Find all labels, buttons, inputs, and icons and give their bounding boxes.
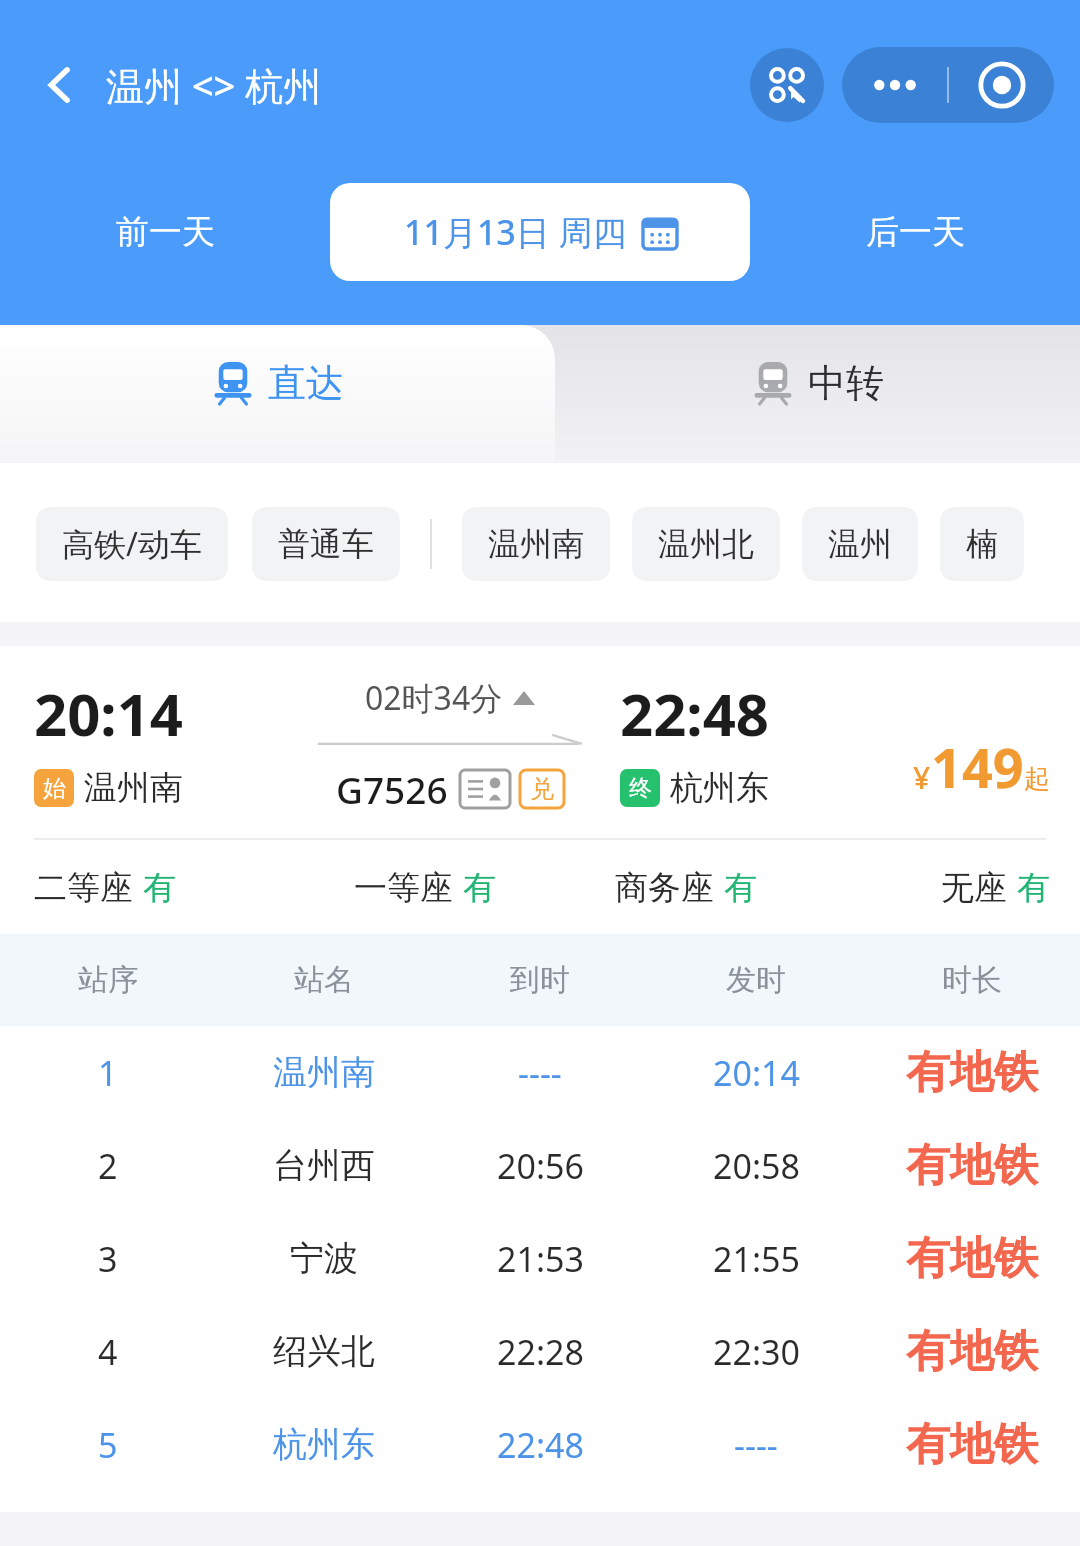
staticText: 到时 <box>510 961 570 999</box>
staticText: 兑 <box>530 774 554 804</box>
staticText: 149 <box>931 730 1024 804</box>
staticText: 有 <box>1017 867 1050 909</box>
staticText: 前一天 <box>116 211 215 253</box>
staticText: 有地铁 <box>906 1138 1038 1193</box>
staticText: 二等座 <box>34 867 133 909</box>
button[interactable]: 温州南 <box>462 507 610 581</box>
staticText: 杭州东 <box>670 767 769 809</box>
staticText: 温州北 <box>658 524 754 564</box>
button[interactable]: 2 <box>0 1119 1080 1212</box>
staticText: 21:53 <box>497 1236 584 1282</box>
staticText: 温州南 <box>84 767 183 809</box>
staticText: 温州 <> 杭州 <box>106 59 322 111</box>
staticText: 20:14 <box>713 1050 800 1096</box>
staticText: 高铁/动车 <box>62 522 202 566</box>
staticText: 后一天 <box>866 211 965 253</box>
button[interactable]: 二等座 <box>34 867 294 909</box>
staticText: ---- <box>734 1422 778 1468</box>
staticText: 无座 <box>941 867 1007 909</box>
staticText: 起 <box>1024 763 1050 796</box>
staticText: 宁波 <box>290 1237 358 1280</box>
button[interactable]: 中转 <box>555 325 1080 463</box>
button[interactable]: 5 <box>0 1398 1080 1491</box>
button[interactable]: 直达 <box>0 325 555 463</box>
staticText: 02时34分 <box>365 676 503 720</box>
button[interactable]: 后一天 <box>750 182 1080 282</box>
button[interactable]: Close <box>949 47 1054 123</box>
staticText: 有地铁 <box>906 1324 1038 1379</box>
staticText: 时长 <box>942 961 1002 999</box>
button[interactable]: 商务座 <box>555 867 816 909</box>
staticText: 4 <box>98 1329 118 1375</box>
staticText: 杭州东 <box>273 1423 375 1466</box>
staticText: 终 <box>629 774 652 803</box>
button[interactable]: 4 <box>0 1305 1080 1398</box>
staticText: 22:48 <box>497 1422 584 1468</box>
button[interactable]: More options <box>842 47 947 123</box>
button[interactable]: 楠 <box>940 507 1024 581</box>
staticText: 有 <box>143 867 176 909</box>
staticText: 3 <box>98 1236 118 1282</box>
button[interactable]: 普通车 <box>252 507 400 581</box>
staticText: 有地铁 <box>906 1231 1038 1286</box>
staticText: 一等座 <box>354 867 453 909</box>
staticText: 有地铁 <box>906 1045 1038 1100</box>
staticText: 站序 <box>78 961 138 999</box>
staticText: 发时 <box>726 961 786 999</box>
staticText: ¥ <box>913 757 931 798</box>
staticText: 中转 <box>808 359 884 407</box>
staticText: 5 <box>98 1422 118 1468</box>
staticText: 温州南 <box>488 524 584 564</box>
staticText: 温州 <box>828 524 892 564</box>
button[interactable]: 3 <box>0 1212 1080 1305</box>
staticText: 绍兴北 <box>273 1330 375 1373</box>
staticText: 20:14 <box>34 674 184 753</box>
button[interactable]: 温州 <box>802 507 918 581</box>
staticText: 温州南 <box>273 1051 375 1094</box>
button[interactable]: Back <box>28 53 92 117</box>
button[interactable]: 前一天 <box>0 182 330 282</box>
staticText: 22:30 <box>713 1329 800 1375</box>
staticText: 有地铁 <box>906 1417 1038 1472</box>
staticText: 22:28 <box>497 1329 584 1375</box>
staticText: 22:48 <box>620 674 770 753</box>
staticText: 直达 <box>268 359 344 407</box>
staticText: 1 <box>98 1050 118 1096</box>
staticText: 有 <box>724 867 757 909</box>
staticText: 商务座 <box>615 867 714 909</box>
button[interactable]: 温州北 <box>632 507 780 581</box>
button[interactable]: 高铁/动车 <box>36 507 228 581</box>
staticText: 20:58 <box>713 1143 800 1189</box>
button[interactable]: 11月13日 周四 <box>330 183 750 281</box>
staticText: 2 <box>98 1143 118 1189</box>
staticText: ---- <box>518 1050 562 1096</box>
staticText: 台州西 <box>273 1144 375 1187</box>
staticText: 11月13日 周四 <box>404 209 627 255</box>
button[interactable]: 无座 <box>816 867 1050 909</box>
staticText: 站名 <box>294 961 354 999</box>
staticText: 始 <box>43 774 66 803</box>
staticText: 有 <box>463 867 496 909</box>
staticText: 20:56 <box>497 1143 584 1189</box>
staticText: G7526 <box>336 764 448 814</box>
button[interactable]: 1 <box>0 1026 1080 1119</box>
staticText: 21:55 <box>713 1236 800 1282</box>
staticText: 普通车 <box>278 524 374 564</box>
button[interactable]: 一等座 <box>294 867 555 909</box>
staticText: 楠 <box>966 524 998 564</box>
button[interactable]: Mini program menu <box>750 48 824 122</box>
